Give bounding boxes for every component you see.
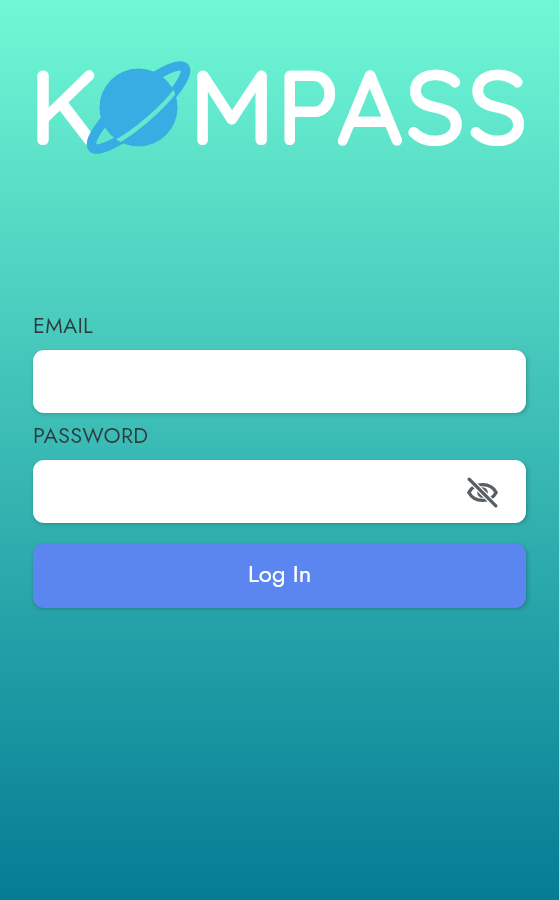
button[interactable]: Show password: [33, 460, 526, 523]
staticText: K MPASS: [29, 40, 530, 171]
button[interactable]: [33, 350, 526, 413]
button[interactable]: Show password: [459, 469, 505, 515]
staticText: PASSWORD: [33, 420, 149, 451]
staticText: EMAIL: [33, 310, 93, 341]
button[interactable]: Log In: [33, 543, 526, 608]
staticText: Log In: [248, 556, 312, 591]
